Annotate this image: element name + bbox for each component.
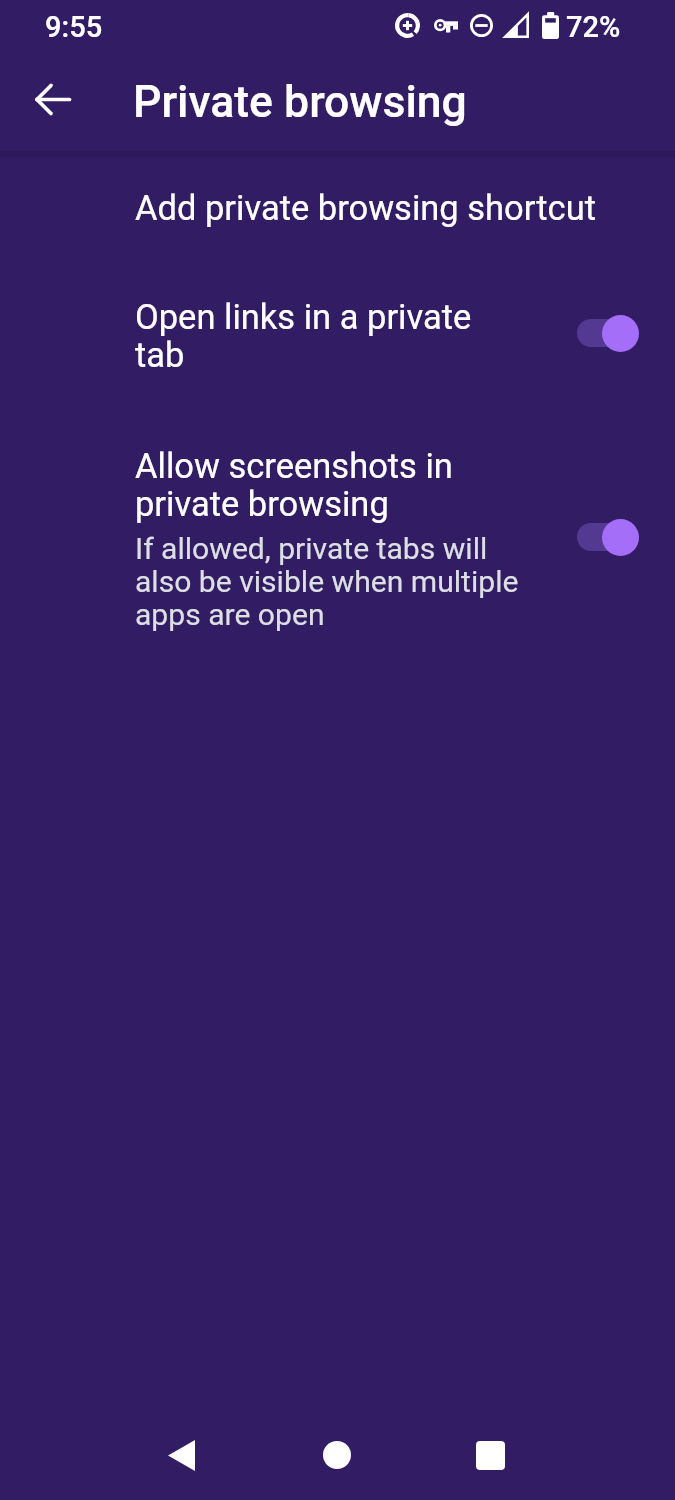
staticText: Open links in a private tab [135,299,495,375]
staticText: Add private browsing shortcut [135,190,615,228]
button[interactable]: Add private browsing shortcut [0,156,675,268]
button[interactable]: Allow screenshots in private browsing [0,418,675,648]
button[interactable]: Open links in a private tab [0,268,675,418]
staticText: Allow screenshots in private browsing [135,448,533,524]
button[interactable]: Toggle setting [567,514,649,560]
button[interactable]: Home [307,1425,367,1485]
staticText: Private browsing [133,76,467,128]
button[interactable]: Toggle setting [567,310,649,356]
staticText: 9:55 [45,10,103,44]
staticText: If allowed, private tabs will also be vi… [135,533,533,632]
button[interactable]: Navigate up [23,70,81,128]
button[interactable]: Recent apps [460,1425,520,1485]
staticText: 72% [566,10,621,44]
button[interactable]: Back [151,1425,211,1485]
